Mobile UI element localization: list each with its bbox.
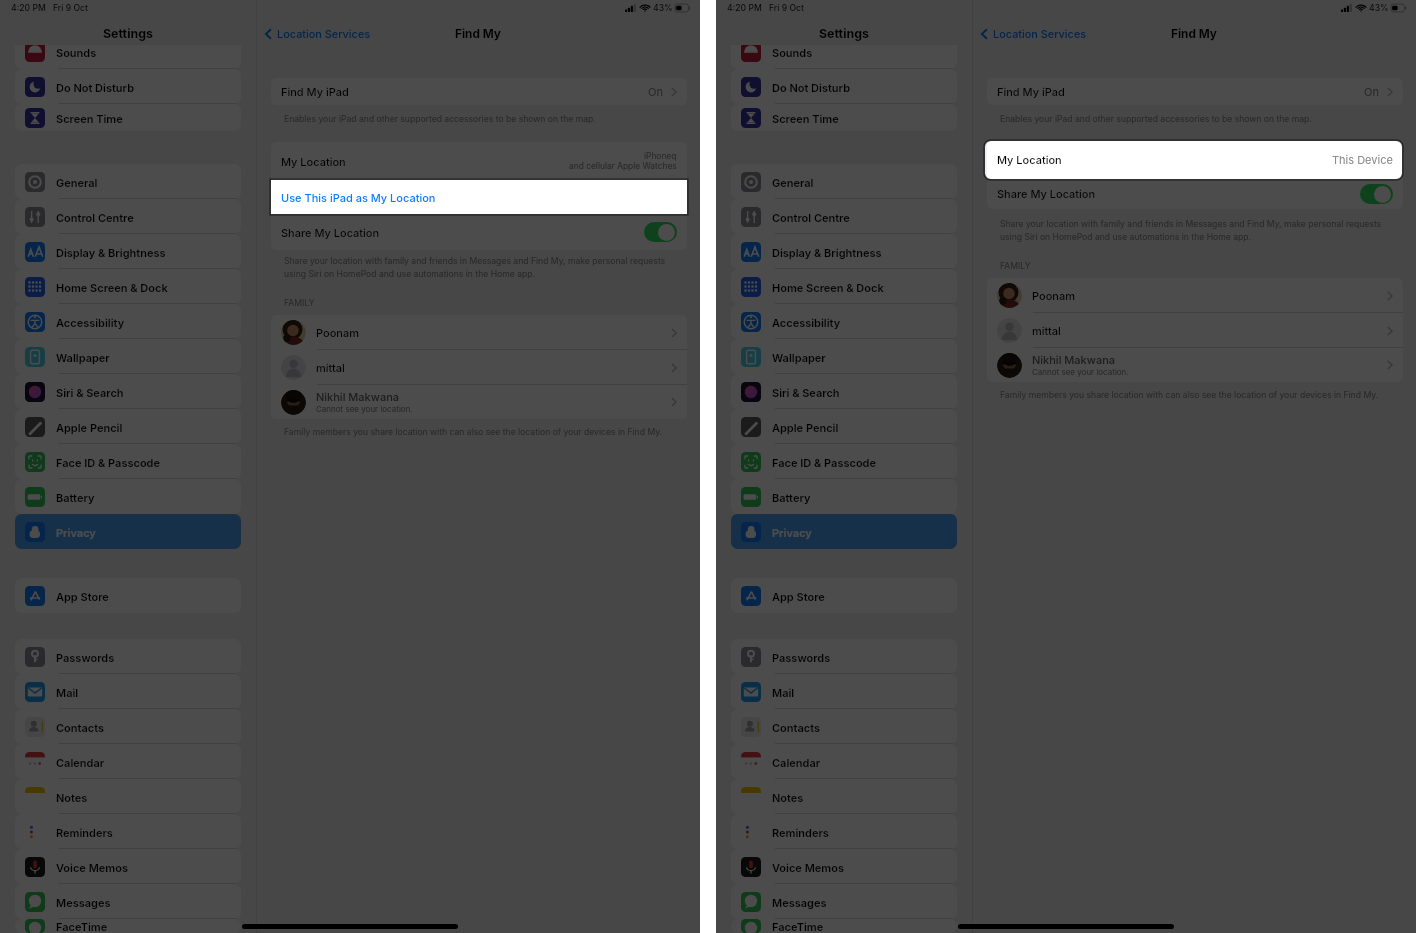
button[interactable]: Siri & Search — [731, 374, 957, 409]
button[interactable]: Control Centre — [15, 199, 241, 234]
staticText: Mail — [772, 686, 795, 699]
button[interactable]: Accessibility — [731, 304, 957, 339]
staticText: Accessibility — [56, 316, 125, 329]
staticText: Wallpaper — [56, 351, 110, 364]
button[interactable]: Wallpaper — [15, 339, 241, 374]
button[interactable]: Share My Location toggle — [1360, 184, 1393, 204]
button[interactable]: Nikhil Makwana — [271, 385, 687, 419]
button[interactable]: Privacy — [15, 514, 241, 549]
button[interactable]: Calendar — [731, 744, 957, 779]
button[interactable]: Battery — [731, 479, 957, 514]
button[interactable]: Poonam — [987, 278, 1403, 313]
button[interactable]: Passwords — [731, 639, 957, 674]
button[interactable]: Find My iPad — [271, 78, 687, 105]
button[interactable]: mittal — [271, 350, 687, 385]
staticText: 43% — [653, 3, 673, 13]
button[interactable]: Reminders — [731, 814, 957, 849]
button[interactable]: Home Screen & Dock — [731, 269, 957, 304]
staticText: Do Not Disturb — [56, 81, 135, 94]
staticText: Contacts — [772, 721, 821, 734]
button[interactable]: Voice Memos — [15, 849, 241, 884]
button[interactable]: Display & Brightness — [15, 234, 241, 269]
button[interactable]: Use This iPad as My Location — [271, 180, 687, 214]
button[interactable]: Nikhil Makwana — [987, 348, 1403, 382]
staticText: General — [772, 176, 814, 189]
staticText: Notes — [772, 791, 804, 804]
staticText: 43% — [1369, 3, 1389, 13]
staticText: Poonam — [316, 326, 359, 339]
button[interactable]: Notes — [15, 779, 241, 814]
staticText: My Location — [997, 153, 1062, 166]
button[interactable]: Back to Location Services — [265, 27, 371, 40]
button[interactable]: Screen Time — [731, 104, 957, 131]
button[interactable]: Sounds — [731, 45, 957, 69]
staticText: Cannot see your location. — [1032, 367, 1129, 377]
button[interactable]: General — [15, 164, 241, 199]
button[interactable]: My Location — [987, 141, 1403, 178]
button[interactable]: Messages — [15, 884, 241, 919]
button[interactable]: Contacts — [731, 709, 957, 744]
staticText: Family members you share location with c… — [1000, 390, 1379, 400]
button[interactable]: Mail — [15, 674, 241, 709]
button[interactable]: Wallpaper — [731, 339, 957, 374]
button[interactable]: App Store — [15, 578, 241, 613]
button[interactable]: Contacts — [15, 709, 241, 744]
button[interactable]: Reminders — [15, 814, 241, 849]
staticText: Fri 9 Oct — [53, 3, 88, 13]
staticText: Control Centre — [772, 211, 850, 224]
button[interactable]: Apple Pencil — [15, 409, 241, 444]
button[interactable]: Back to Location Services — [981, 27, 1087, 40]
button[interactable]: Battery — [15, 479, 241, 514]
button[interactable]: Siri & Search — [15, 374, 241, 409]
button[interactable]: Poonam — [271, 315, 687, 350]
staticText: Use This iPad as My Location — [281, 191, 436, 204]
button[interactable]: Accessibility — [15, 304, 241, 339]
button[interactable]: Apple Pencil — [731, 409, 957, 444]
button[interactable]: Passwords — [15, 639, 241, 674]
staticText: Passwords — [56, 651, 115, 664]
staticText: Wallpaper — [772, 351, 826, 364]
button[interactable]: Mail — [731, 674, 957, 709]
button[interactable]: Messages — [731, 884, 957, 919]
staticText: and cellular Apple Watches — [569, 161, 677, 171]
staticText: iPhoneq — [644, 151, 677, 161]
button[interactable]: Screen Time — [15, 104, 241, 131]
staticText: App Store — [772, 590, 825, 603]
button[interactable]: Display & Brightness — [731, 234, 957, 269]
staticText: Sounds — [772, 46, 813, 59]
button[interactable]: Face ID & Passcode — [731, 444, 957, 479]
button[interactable]: FaceTime — [15, 919, 241, 933]
button[interactable]: Sounds — [15, 45, 241, 69]
button[interactable]: My Location — [271, 142, 687, 180]
staticText: Siri & Search — [772, 386, 840, 399]
button[interactable]: Control Centre — [731, 199, 957, 234]
staticText: Enables your iPad and other supported ac… — [284, 114, 596, 124]
button[interactable]: Share My Location toggle — [644, 222, 677, 242]
staticText: Face ID & Passcode — [772, 456, 876, 469]
staticText: Privacy — [772, 526, 812, 539]
staticText: App Store — [56, 590, 109, 603]
button[interactable]: General — [731, 164, 957, 199]
staticText: Siri & Search — [56, 386, 124, 399]
staticText: Passwords — [772, 651, 831, 664]
button[interactable]: Notes — [731, 779, 957, 814]
button[interactable]: App Store — [731, 578, 957, 613]
staticText: Display & Brightness — [56, 246, 166, 259]
staticText: Settings — [819, 26, 869, 41]
staticText: Do Not Disturb — [772, 81, 851, 94]
staticText: Find My iPad — [281, 85, 349, 98]
staticText: Screen Time — [772, 112, 839, 125]
button[interactable]: Do Not Disturb — [731, 69, 957, 104]
button[interactable]: Calendar — [15, 744, 241, 779]
button[interactable]: FaceTime — [731, 919, 957, 933]
button[interactable]: Find My iPad — [987, 78, 1403, 105]
staticText: Share your location with family and frie… — [1000, 219, 1382, 242]
button[interactable]: Home Screen & Dock — [15, 269, 241, 304]
button[interactable]: Face ID & Passcode — [15, 444, 241, 479]
button[interactable]: Do Not Disturb — [15, 69, 241, 104]
staticText: Apple Pencil — [772, 421, 839, 434]
staticText: Find My — [1171, 27, 1217, 41]
button[interactable]: Voice Memos — [731, 849, 957, 884]
button[interactable]: Privacy — [731, 514, 957, 549]
button[interactable]: mittal — [987, 313, 1403, 348]
